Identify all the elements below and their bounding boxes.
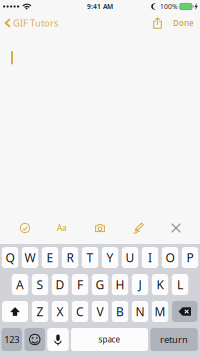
staticText: G [95,276,104,292]
button[interactable]: J [132,274,148,295]
button[interactable]: G [92,274,108,295]
staticText: W [24,249,35,265]
button[interactable]: A [12,274,28,295]
staticText: E [46,249,53,265]
button[interactable]: Z [32,301,48,322]
button[interactable]: I [142,247,158,268]
button[interactable]: D [52,274,68,295]
button[interactable]: P [182,247,198,268]
button[interactable]: space [71,328,148,351]
staticText: T [86,249,93,265]
staticText: K [156,276,163,292]
staticText: 100% [160,2,178,11]
button[interactable]: Y [102,247,118,268]
button[interactable]: O [162,247,178,268]
button[interactable]: E [42,247,58,268]
button[interactable]: Emoji [24,328,45,351]
staticText: J [138,276,141,292]
button[interactable]: V [92,301,108,322]
button[interactable]: 123 [1,328,22,351]
button[interactable]: B [112,301,128,322]
button[interactable]: GIF Tutors [0,14,58,32]
button[interactable]: Q [2,247,18,268]
button[interactable]: X [52,301,68,322]
button[interactable]: N [132,301,148,322]
button[interactable]: F [72,274,88,295]
button[interactable]: Done [173,15,200,31]
staticText: GIF Tutors [13,17,58,29]
button[interactable]: R [62,247,78,268]
button[interactable]: W [22,247,38,268]
staticText: L [177,276,183,292]
button[interactable]: return [150,328,198,351]
button[interactable]: C [72,301,88,322]
staticText: 9:41 AM [87,2,113,11]
staticText: M [154,303,165,319]
staticText: P [186,249,193,265]
button[interactable]: H [112,274,128,295]
staticText: Q [5,249,14,265]
staticText: 123 [4,333,19,346]
button[interactable]: U [122,247,138,268]
staticText: V [96,303,103,319]
staticText: U [125,249,134,265]
staticText: C [76,303,84,319]
staticText: I [148,249,152,265]
staticText: N [135,303,144,319]
staticText: Z [36,303,43,319]
button[interactable]: S [32,274,48,295]
button[interactable]: Delete [172,301,197,322]
button[interactable]: Text format [47,217,77,239]
button[interactable]: T [82,247,98,268]
staticText: space [98,334,120,345]
button[interactable]: K [152,274,168,295]
button[interactable]: L [172,274,188,295]
staticText: Y [106,249,113,265]
staticText: F [77,276,83,292]
staticText: S [36,276,43,292]
staticText: B [116,303,124,319]
staticText: X [56,303,63,319]
button[interactable]: Checklist [10,217,40,239]
button[interactable]: Markup [123,217,153,239]
button[interactable]: Shift [2,301,28,322]
button[interactable]: Share [153,15,162,31]
staticText: D [55,276,64,292]
button[interactable]: M [152,301,168,322]
staticText: R [66,249,73,265]
staticText: H [115,276,124,292]
staticText: Aa [57,223,67,233]
staticText: Done [173,18,194,28]
staticText: O [165,249,174,265]
button[interactable]: Hide keyboard [161,217,191,239]
staticText: A [16,276,24,292]
staticText: return [160,333,188,346]
button[interactable]: Dictation [47,328,69,351]
button[interactable]: Camera [85,217,115,239]
